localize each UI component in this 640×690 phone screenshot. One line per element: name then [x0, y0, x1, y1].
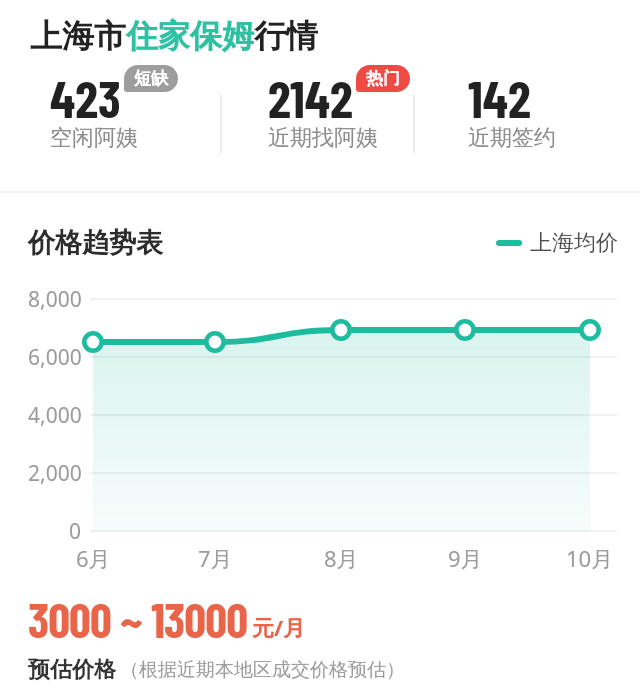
staticText: 10月: [566, 543, 614, 573]
staticText: 行情: [254, 16, 318, 56]
staticText: 上海均价: [530, 229, 618, 257]
staticText: 4,000: [28, 401, 82, 430]
staticText: 近期签约: [468, 124, 556, 152]
staticText: 价格趋势表: [28, 226, 163, 260]
staticText: 预估价格: [28, 656, 116, 684]
staticText: 3000 ~ 13000: [28, 590, 248, 648]
staticText: 0: [69, 517, 82, 546]
button[interactable]: 热门: [356, 65, 410, 92]
staticText: 7月: [198, 543, 233, 573]
staticText: 8,000: [28, 285, 82, 314]
staticText: 住家保姆: [126, 16, 254, 56]
staticText: 142: [468, 66, 531, 128]
staticText: 空闲阿姨: [50, 124, 138, 152]
staticText: 热门: [366, 68, 400, 89]
staticText: 近期找阿姨: [268, 124, 378, 152]
staticText: 2142: [268, 66, 353, 128]
button[interactable]: 短缺: [124, 65, 178, 92]
staticText: 9月: [448, 543, 483, 573]
staticText: 6月: [76, 543, 111, 573]
staticText: 423: [50, 66, 121, 128]
staticText: 上海市: [30, 16, 126, 56]
staticText: 短缺: [134, 68, 168, 89]
staticText: 元/月: [252, 612, 306, 642]
staticText: （根据近期本地区成交价格预估）: [120, 658, 405, 682]
staticText: 8月: [324, 543, 359, 573]
staticText: 6,000: [28, 343, 82, 372]
staticText: 2,000: [28, 459, 82, 488]
